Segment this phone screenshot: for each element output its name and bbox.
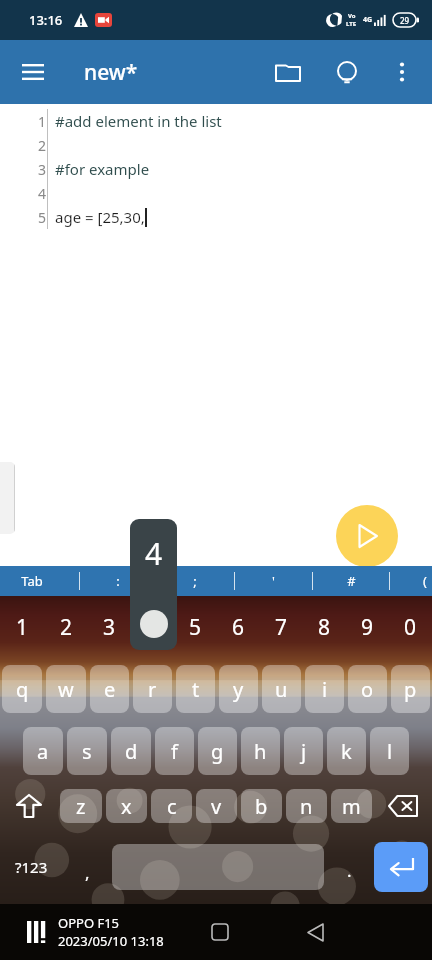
staticText: e <box>104 676 116 703</box>
button[interactable]: 6 <box>217 596 260 658</box>
staticText: 4 <box>146 613 159 642</box>
staticText: r <box>148 676 157 703</box>
button[interactable]: Tab <box>8 566 56 596</box>
staticText: c <box>167 793 177 820</box>
button[interactable]: Back <box>295 912 335 952</box>
button[interactable]: l <box>370 727 409 775</box>
button[interactable]: 8 <box>303 596 346 658</box>
staticText: z <box>76 793 86 820</box>
staticText: b <box>255 793 268 820</box>
button[interactable]: a <box>23 727 63 775</box>
staticText: y <box>233 676 244 703</box>
staticText: 8 <box>318 613 331 642</box>
button[interactable]: q <box>2 665 42 713</box>
staticText: 0 <box>404 613 417 642</box>
staticText: ; <box>193 572 197 590</box>
button[interactable]: n <box>286 789 327 823</box>
button[interactable]: : <box>94 566 142 596</box>
button[interactable]: 0 <box>389 596 432 658</box>
button[interactable]: p <box>391 665 430 713</box>
button[interactable]: 4 <box>131 596 174 658</box>
staticText: ( <box>423 572 427 590</box>
staticText: d <box>125 738 138 765</box>
button[interactable]: 7 <box>260 596 303 658</box>
staticText: u <box>275 676 288 703</box>
button[interactable]: ' <box>249 566 297 596</box>
button[interactable]: 3 <box>88 596 131 658</box>
staticText: l <box>387 738 393 765</box>
button[interactable]: w <box>46 665 86 713</box>
button[interactable]: r <box>133 665 172 713</box>
button[interactable]: j <box>284 727 323 775</box>
staticText: . <box>347 859 352 882</box>
staticText: 3 <box>38 160 47 179</box>
button[interactable]: Space <box>112 844 324 890</box>
button[interactable]: t <box>176 665 215 713</box>
button[interactable]: Menu <box>10 49 56 95</box>
staticText: Vo <box>348 12 356 20</box>
button[interactable]: ; <box>171 566 219 596</box>
button[interactable]: m <box>331 789 372 823</box>
button[interactable]: d <box>111 727 151 775</box>
button[interactable]: u <box>262 665 301 713</box>
button[interactable]: Backspace <box>374 782 432 830</box>
button[interactable]: Shift <box>0 782 58 830</box>
staticText: k <box>341 738 352 765</box>
button[interactable]: 5 <box>174 596 217 658</box>
staticText: n <box>300 793 313 820</box>
button[interactable]: Enter <box>374 842 428 892</box>
button[interactable]: x <box>106 789 147 823</box>
staticText: 2023/05/10 13:18 <box>58 932 164 950</box>
button[interactable]: ?123 <box>0 842 62 892</box>
staticText: t <box>192 676 200 703</box>
button[interactable]: . <box>324 842 374 892</box>
staticText: 2 <box>60 613 73 642</box>
staticText: s <box>82 738 92 765</box>
staticText: 5 <box>38 208 47 227</box>
staticText: 1 <box>38 112 47 131</box>
button[interactable]: y <box>219 665 258 713</box>
button[interactable]: i <box>305 665 344 713</box>
staticText: ?123 <box>15 857 48 877</box>
staticText: LTE <box>346 20 357 28</box>
staticText: #add element in the list <box>55 111 222 131</box>
button[interactable]: Scroll handle <box>0 462 15 534</box>
staticText: 4 <box>145 533 163 574</box>
button[interactable]: k <box>327 727 366 775</box>
staticText: 9 <box>361 613 374 642</box>
button[interactable]: 9 <box>346 596 389 658</box>
button[interactable]: ( <box>401 566 432 596</box>
staticText: #for example <box>55 159 150 179</box>
button[interactable]: s <box>67 727 107 775</box>
button[interactable]: 2 <box>44 596 88 658</box>
button[interactable]: z <box>60 789 102 823</box>
staticText: 29 <box>400 15 410 26</box>
staticText: 13:16 <box>29 11 63 29</box>
button[interactable]: 1 <box>0 596 44 658</box>
staticText: 4 <box>38 184 47 203</box>
button[interactable]: Open folder <box>265 49 311 95</box>
button[interactable]: Run <box>336 505 398 567</box>
button[interactable]: Recents <box>200 912 240 952</box>
button[interactable]: # <box>327 566 375 596</box>
button[interactable]: , <box>62 842 112 892</box>
button[interactable]: g <box>198 727 237 775</box>
button[interactable]: f <box>155 727 194 775</box>
button[interactable]: o <box>348 665 387 713</box>
button[interactable]: v <box>196 789 237 823</box>
staticText: 4G <box>363 15 373 25</box>
button[interactable]: More options <box>379 49 425 95</box>
button[interactable]: b <box>241 789 282 823</box>
button[interactable]: Hints <box>324 49 370 95</box>
staticText: 3 <box>103 613 116 642</box>
staticText: f <box>171 738 178 765</box>
staticText: q <box>16 676 29 703</box>
button[interactable]: c <box>151 789 192 823</box>
staticText: o <box>361 676 374 703</box>
staticText: w <box>58 676 74 703</box>
staticText: # <box>347 572 356 590</box>
button[interactable]: h <box>241 727 280 775</box>
button[interactable]: e <box>90 665 129 713</box>
staticText: new* <box>84 58 138 87</box>
staticText: 7 <box>275 613 288 642</box>
